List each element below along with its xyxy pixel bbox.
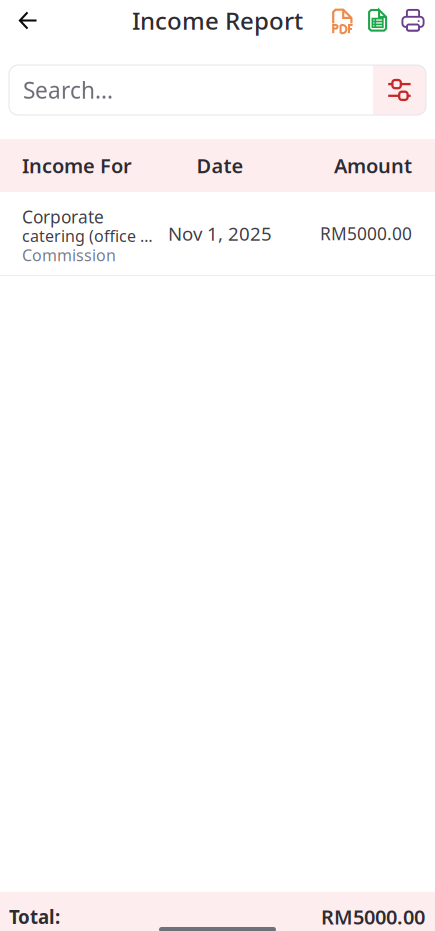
staticText: catering (office … bbox=[22, 225, 153, 246]
button[interactable]: Export as PDF bbox=[331, 6, 354, 35]
button[interactable]: Export as spreadsheet bbox=[366, 6, 389, 35]
staticText: Income Report bbox=[132, 5, 303, 36]
staticText: Date bbox=[196, 152, 243, 179]
staticText: Nov 1, 2025 bbox=[168, 221, 272, 246]
staticText: Search... bbox=[23, 75, 113, 105]
staticText: Amount bbox=[334, 152, 412, 179]
staticText: Corporate bbox=[22, 205, 104, 228]
staticText: Income For bbox=[22, 152, 132, 179]
button[interactable]: Filter bbox=[373, 65, 426, 115]
staticText: Commission bbox=[22, 244, 116, 266]
button[interactable]: Print bbox=[401, 6, 425, 35]
button[interactable]: Back bbox=[0, 0, 50, 41]
staticText: RM5000.00 bbox=[321, 903, 425, 930]
staticText: RM5000.00 bbox=[320, 222, 412, 245]
button[interactable]: Corporate bbox=[0, 192, 435, 276]
staticText: Total: bbox=[9, 904, 60, 929]
